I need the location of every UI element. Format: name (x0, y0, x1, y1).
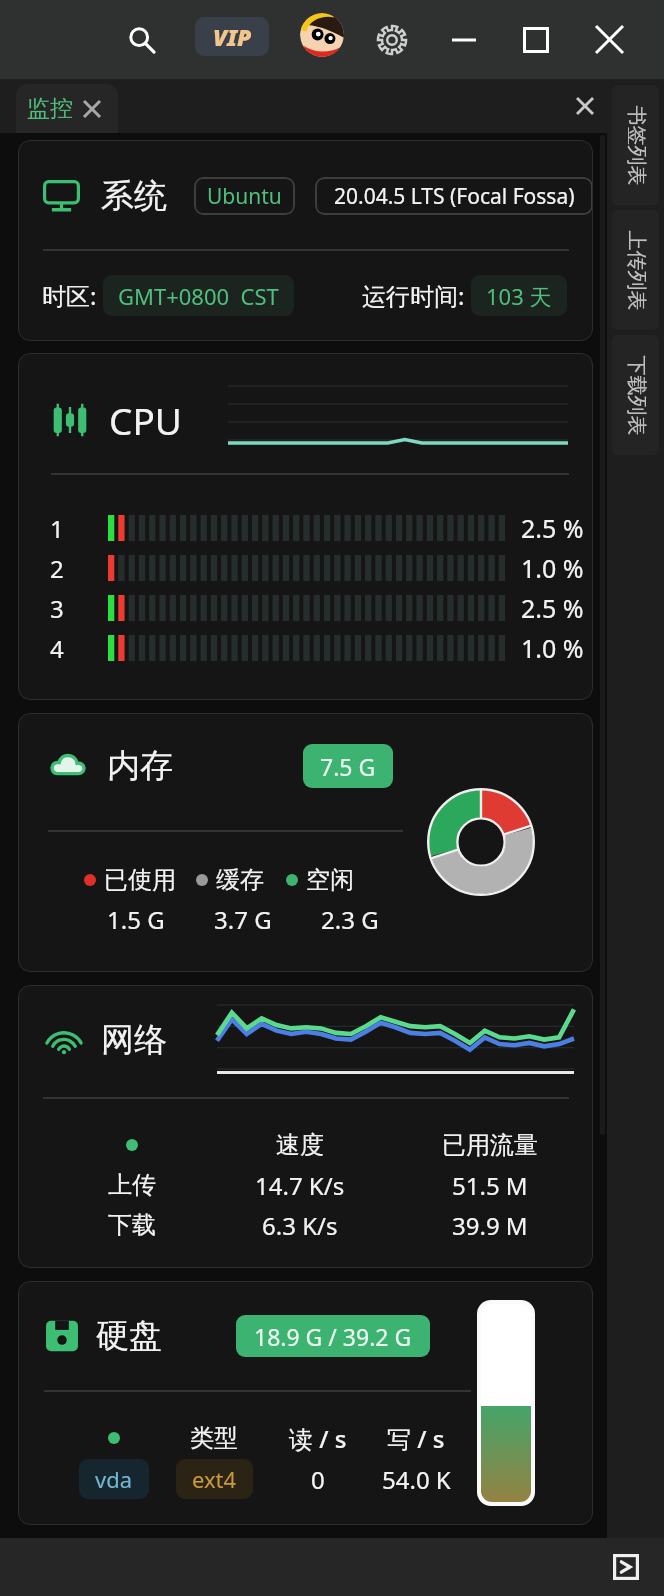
button[interactable]: Terminal (605, 1546, 647, 1588)
staticText: 上传 (108, 1170, 156, 1200)
button[interactable]: VIP (195, 17, 269, 56)
staticText: 54.0 K (382, 1463, 451, 1496)
staticText: 0 (311, 1463, 325, 1496)
staticText: 写 / s (387, 1422, 445, 1455)
button[interactable]: Minimize (427, 0, 500, 79)
staticText: 4 (50, 632, 64, 665)
button[interactable]: 上传列表 (612, 210, 659, 330)
staticText: 3.7 G (214, 903, 272, 936)
staticText: 上传列表 (623, 230, 648, 310)
staticText: 下载列表 (623, 355, 648, 435)
staticText: 7.5 G (320, 751, 376, 782)
staticText: VIP (213, 21, 252, 52)
staticText: 6.3 K/s (262, 1209, 338, 1242)
staticText: 书签列表 (623, 105, 648, 185)
staticText: Ubuntu (207, 182, 282, 211)
staticText: 1 (50, 512, 64, 545)
staticText: 监控 (27, 94, 73, 123)
button[interactable]: Maximize (499, 0, 572, 79)
staticText: GMT+0800 CST (118, 281, 279, 311)
staticText: 硬盘 (96, 1315, 162, 1357)
button[interactable]: Close (573, 0, 646, 79)
staticText: 已用流量 (442, 1130, 538, 1160)
staticText: 缓存 (216, 865, 264, 895)
staticText: 时区: (42, 279, 97, 312)
staticText: 39.9 M (452, 1209, 528, 1242)
staticText: 2.5 % (521, 591, 584, 625)
button[interactable]: 书签列表 (612, 85, 659, 205)
staticText: 运行时间: (362, 279, 465, 312)
staticText: 读 / s (289, 1422, 347, 1455)
staticText: 2 (50, 552, 64, 585)
staticText: 1.0 % (521, 631, 584, 665)
staticText: 系统 (101, 175, 167, 217)
staticText: 20.04.5 LTS (Focal Fossa) (334, 182, 575, 211)
staticText: 空闲 (306, 865, 354, 895)
staticText: 1.0 % (521, 551, 584, 585)
staticText: 内存 (107, 745, 173, 787)
button[interactable]: 监控 (16, 84, 118, 133)
button[interactable]: Search (117, 0, 167, 79)
staticText: 类型 (190, 1423, 238, 1453)
staticText: 14.7 K/s (255, 1169, 345, 1202)
staticText: 2.5 % (521, 511, 584, 545)
staticText: ext4 (192, 1464, 237, 1494)
button[interactable]: Close tab (566, 87, 604, 125)
staticText: 已使用 (104, 865, 176, 895)
staticText: 速度 (276, 1130, 324, 1160)
staticText: 1.5 G (107, 903, 165, 936)
staticText: 3 (50, 592, 64, 625)
staticText: 103 天 (486, 281, 552, 311)
button[interactable]: 下载列表 (612, 335, 659, 455)
staticText: vda (95, 1464, 133, 1494)
staticText: CPU (109, 395, 182, 445)
button[interactable]: Settings (367, 0, 417, 79)
button[interactable]: Account (300, 13, 344, 57)
staticText: 18.9 G / 39.2 G (254, 1321, 412, 1352)
staticText: 51.5 M (452, 1169, 528, 1202)
staticText: 下载 (108, 1210, 156, 1240)
staticText: 2.3 G (321, 903, 379, 936)
staticText: 网络 (101, 1019, 167, 1061)
